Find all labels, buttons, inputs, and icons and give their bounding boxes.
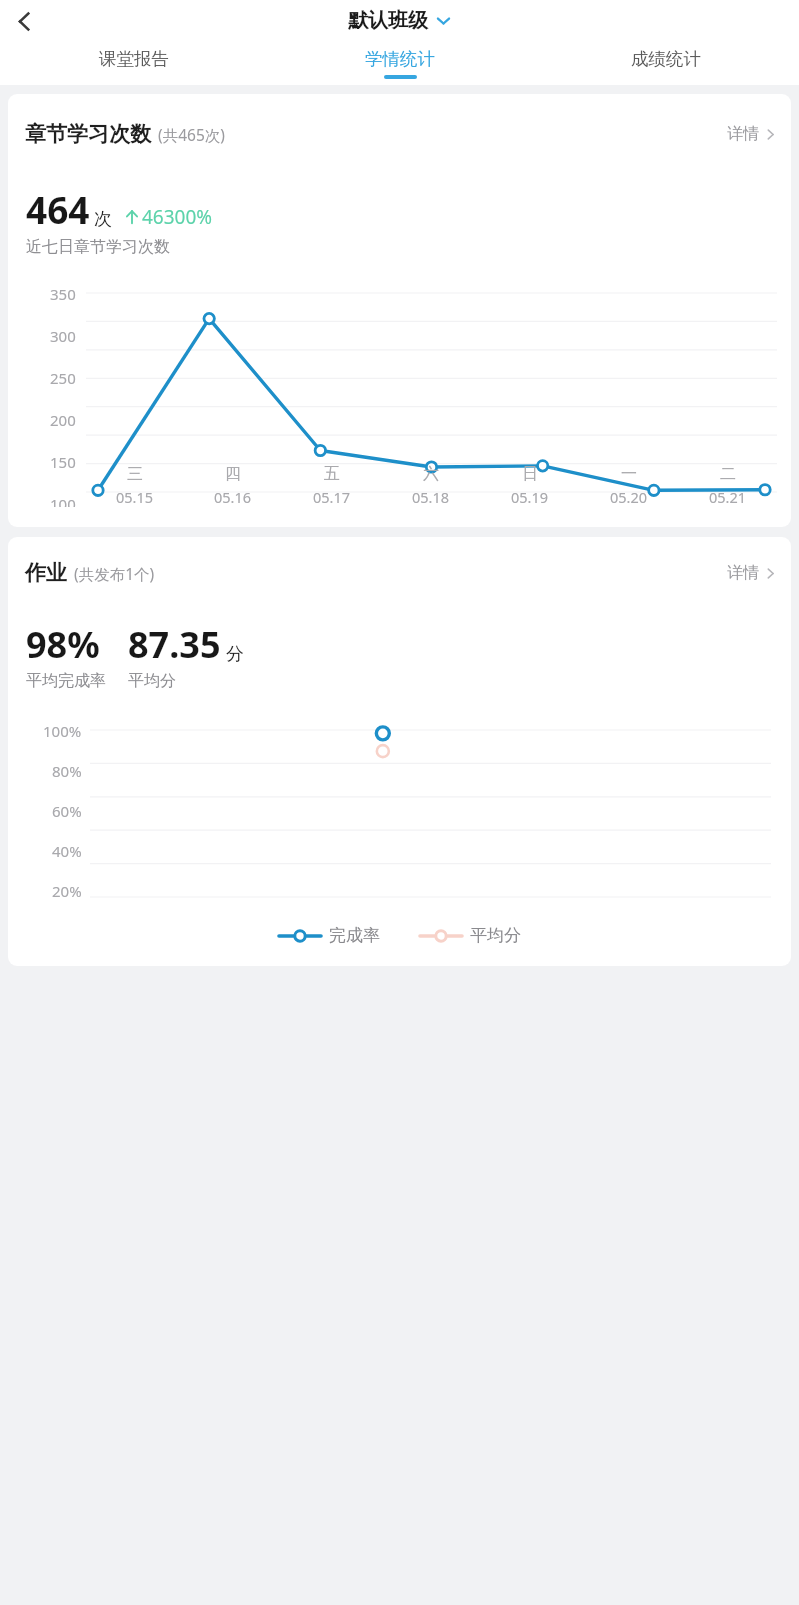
button[interactable]: 详情 bbox=[727, 124, 777, 144]
staticText: 250 bbox=[50, 368, 76, 386]
staticText: 平均分 bbox=[128, 671, 176, 691]
button[interactable]: 学情统计 bbox=[267, 41, 533, 85]
staticText: 350 bbox=[50, 284, 76, 302]
staticText: (共发布1个) bbox=[74, 563, 155, 584]
staticText: 成绩统计 bbox=[631, 48, 701, 70]
staticText: 完成率 bbox=[329, 925, 380, 946]
staticText: (共465次) bbox=[158, 124, 225, 145]
staticText: 近七日章节学习次数 bbox=[26, 237, 170, 257]
staticText: 05.16 bbox=[214, 487, 252, 507]
staticText: 一 bbox=[621, 464, 637, 484]
button[interactable]: Back bbox=[5, 2, 43, 40]
staticText: 分 bbox=[226, 643, 244, 666]
button[interactable]: 课堂报告 bbox=[0, 41, 267, 85]
staticText: 150 bbox=[50, 452, 76, 470]
staticText: 200 bbox=[50, 410, 76, 428]
staticText: 100 bbox=[50, 494, 76, 507]
staticText: 学情统计 bbox=[365, 48, 435, 70]
staticText: 默认班级 bbox=[348, 8, 428, 33]
staticText: 05.18 bbox=[412, 487, 450, 507]
button[interactable]: 平均分 bbox=[420, 925, 521, 946]
staticText: 作业 bbox=[25, 560, 67, 586]
button[interactable]: 详情 bbox=[727, 563, 777, 583]
staticText: 464 bbox=[26, 184, 90, 234]
staticText: 98% bbox=[26, 620, 100, 669]
staticText: 四 bbox=[225, 464, 241, 484]
staticText: 05.15 bbox=[116, 487, 154, 507]
staticText: 05.19 bbox=[511, 487, 549, 507]
staticText: 300 bbox=[50, 326, 76, 344]
staticText: 80% bbox=[52, 761, 82, 779]
staticText: 课堂报告 bbox=[99, 48, 169, 70]
staticText: 六 bbox=[423, 464, 439, 484]
staticText: 详情 bbox=[727, 124, 759, 144]
staticText: 60% bbox=[52, 801, 82, 819]
staticText: 40% bbox=[52, 841, 82, 859]
staticText: 87.35 bbox=[128, 620, 221, 669]
staticText: 三 bbox=[127, 464, 143, 484]
staticText: 二 bbox=[720, 464, 736, 484]
button[interactable]: 默认班级 bbox=[348, 8, 451, 33]
staticText: 五 bbox=[324, 464, 340, 484]
staticText: 平均分 bbox=[470, 925, 521, 946]
staticText: 46300% bbox=[142, 204, 213, 230]
button[interactable]: 完成率 bbox=[279, 925, 380, 946]
staticText: 平均完成率 bbox=[26, 671, 106, 691]
staticText: 20% bbox=[52, 881, 82, 899]
staticText: 05.21 bbox=[709, 487, 747, 507]
staticText: 详情 bbox=[727, 563, 759, 583]
staticText: 日 bbox=[522, 464, 538, 484]
staticText: 次 bbox=[94, 208, 112, 231]
staticText: 05.20 bbox=[610, 487, 648, 507]
staticText: 05.17 bbox=[313, 487, 351, 507]
button[interactable]: 成绩统计 bbox=[533, 41, 799, 85]
staticText: 100% bbox=[43, 721, 82, 739]
staticText: 章节学习次数 bbox=[25, 121, 151, 147]
